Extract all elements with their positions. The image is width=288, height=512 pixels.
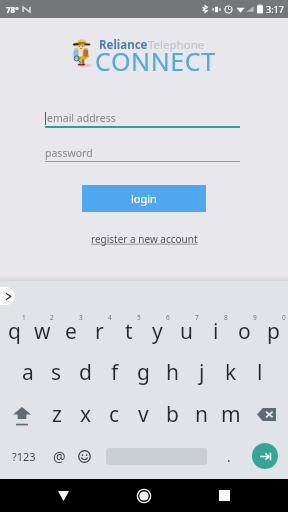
button[interactable]: email address — [45, 108, 240, 128]
staticText: o — [238, 317, 251, 346]
staticText: y — [152, 317, 163, 346]
button[interactable]: ?123 — [5, 438, 42, 474]
staticText: d — [79, 358, 92, 387]
staticText: @ — [53, 447, 66, 466]
button[interactable]: l — [245, 350, 274, 394]
staticText: a — [22, 358, 34, 387]
button[interactable]: x — [71, 392, 100, 436]
staticText: password — [45, 146, 93, 160]
button[interactable]: g — [129, 350, 158, 394]
staticText: n — [195, 400, 208, 429]
button[interactable]: Next — [252, 443, 278, 469]
button[interactable]: d — [71, 350, 100, 394]
staticText: h — [166, 358, 179, 387]
staticText: ?123 — [12, 449, 36, 464]
button[interactable]: m — [216, 392, 245, 436]
staticText: 2 — [50, 313, 54, 322]
staticText: 5 — [137, 313, 141, 322]
staticText: u — [180, 317, 193, 346]
staticText: Telephone — [148, 37, 205, 53]
staticText: i — [213, 317, 219, 346]
staticText: 7 — [195, 313, 199, 322]
button[interactable]: 0 — [259, 308, 288, 354]
staticText: 78° — [6, 4, 19, 15]
button[interactable]: c — [100, 392, 129, 436]
staticText: 3:17 — [266, 3, 284, 15]
staticText: 1 — [22, 313, 26, 322]
button[interactable]: z — [43, 392, 71, 436]
staticText: 0 — [282, 313, 286, 322]
staticText: email address — [47, 111, 116, 125]
staticText: t — [125, 317, 133, 346]
button[interactable]: h — [158, 350, 187, 394]
button[interactable]: login — [82, 185, 206, 212]
staticText: 4 — [108, 313, 112, 322]
button[interactable]: n — [187, 392, 216, 436]
button[interactable]: password — [45, 143, 240, 163]
staticText: c — [109, 400, 120, 429]
staticText: Reliance — [99, 37, 148, 53]
button[interactable]: 2 — [28, 308, 56, 354]
staticText: r — [95, 317, 104, 346]
staticText: p — [267, 317, 280, 346]
staticText: q — [8, 317, 21, 346]
button[interactable]: 6 — [143, 308, 172, 354]
staticText: 9 — [253, 313, 257, 322]
staticText: k — [225, 358, 237, 387]
button[interactable]: . — [214, 438, 243, 474]
button[interactable]: Shift — [0, 392, 44, 436]
button[interactable]: 8 — [201, 308, 230, 354]
staticText: j — [199, 358, 205, 387]
button[interactable]: j — [187, 350, 216, 394]
staticText: s — [51, 358, 62, 387]
button[interactable]: Emoji — [70, 438, 99, 474]
staticText: w — [34, 317, 51, 346]
staticText: x — [80, 400, 92, 429]
staticText: b — [166, 400, 179, 429]
button[interactable]: 1 — [0, 308, 28, 354]
button[interactable]: a — [13, 350, 42, 394]
button[interactable]: b — [158, 392, 187, 436]
staticText: l — [257, 358, 263, 387]
staticText: m — [221, 400, 241, 429]
staticText: g — [137, 358, 150, 387]
staticText: login — [131, 191, 157, 206]
button[interactable]: Home — [126, 479, 162, 512]
button[interactable]: register a new account — [89, 230, 200, 248]
button[interactable]: f — [100, 350, 129, 394]
button[interactable]: v — [129, 392, 158, 436]
button[interactable]: Expand suggestions — [0, 287, 15, 305]
staticText: v — [138, 400, 149, 429]
staticText: CONNECT — [95, 44, 216, 78]
button[interactable]: k — [216, 350, 245, 394]
button[interactable]: 7 — [172, 308, 201, 354]
staticText: 3 — [79, 313, 83, 322]
button[interactable]: s — [42, 350, 71, 394]
staticText: e — [65, 317, 77, 346]
button[interactable]: 5 — [114, 308, 143, 354]
staticText: z — [52, 400, 62, 429]
staticText: 6 — [166, 313, 170, 322]
button[interactable]: 3 — [56, 308, 85, 354]
button[interactable]: 4 — [85, 308, 114, 354]
button[interactable]: 9 — [230, 308, 259, 354]
staticText: f — [111, 358, 119, 387]
button[interactable]: Back — [45, 479, 81, 512]
button[interactable]: Backspace — [244, 392, 288, 436]
staticText: . — [227, 447, 231, 466]
button[interactable]: Recents — [206, 479, 242, 512]
staticText: 8 — [224, 313, 228, 322]
button[interactable]: @ — [44, 438, 74, 474]
